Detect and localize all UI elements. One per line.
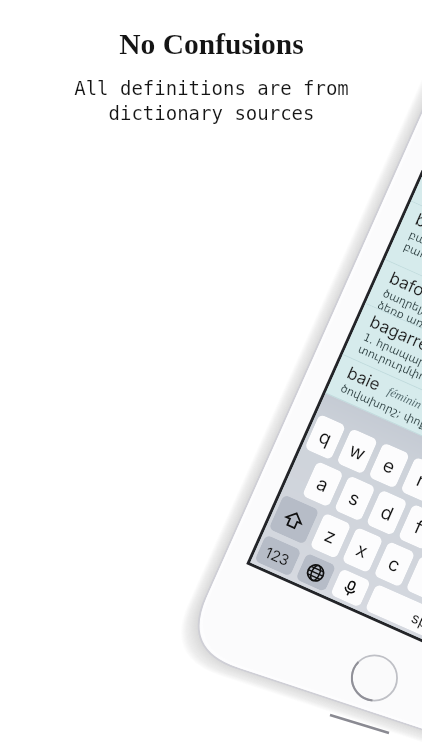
button[interactable]: babiller [385,201,422,398]
button[interactable]: bagatelle [411,143,422,340]
button[interactable]: d [366,489,408,536]
staticText: w [345,438,369,466]
button[interactable]: bafouer [365,260,422,442]
button[interactable]: space [365,584,422,665]
staticText: No Confusions [119,28,304,61]
button[interactable]: Dictate [330,568,371,608]
staticText: space [409,608,422,642]
staticText: 1. հրապարակային կռիվ, [361,331,422,403]
staticText: բառեր, շատախոսել, զրուցել [407,228,422,309]
staticText: ձեռք առնել, խայտառակել [376,299,422,371]
staticText: babiller [412,209,422,253]
button[interactable]: x [341,527,383,573]
button[interactable]: bagarre [343,304,422,493]
button[interactable]: a [302,461,344,507]
staticText: x [353,538,372,563]
staticText: d [377,500,397,526]
button[interactable]: e [368,442,410,489]
button[interactable]: s [334,475,376,522]
button[interactable]: z [309,512,351,559]
staticText: baie [344,363,384,396]
button[interactable]: 123 [254,534,302,577]
staticText: féminin [386,384,422,411]
staticText: z [321,523,340,549]
staticText: bafouer [386,268,422,312]
button[interactable]: v [405,555,422,602]
staticText: տուրուդմփոց; կըռիվ [356,342,422,404]
staticText: ծովախորշ; փոքրիկ ծովածոց [338,382,422,463]
staticText: c [384,552,404,577]
button[interactable]: f [398,504,422,550]
staticText: bagarre [366,311,422,356]
staticText: 123 [263,543,293,569]
staticText: a [313,472,332,497]
button[interactable]: w [336,428,378,474]
staticText: e [379,453,399,479]
staticText: բառախոսել, ճըմլիկ [401,240,422,299]
staticText: All definitions are from dictionary sour… [74,77,349,125]
staticText: r [413,468,422,493]
button[interactable]: Change language [295,553,336,592]
staticText: ծաղրել, ծաղրուծանակի ենթարկել [381,287,422,381]
staticText: q [315,425,336,451]
button[interactable]: baie [325,355,422,532]
button[interactable]: r [400,456,422,503]
button[interactable]: q [304,414,346,460]
staticText: f [411,515,422,540]
button[interactable]: c [373,541,415,587]
staticText: s [345,486,364,512]
button[interactable]: Shift [268,494,319,545]
